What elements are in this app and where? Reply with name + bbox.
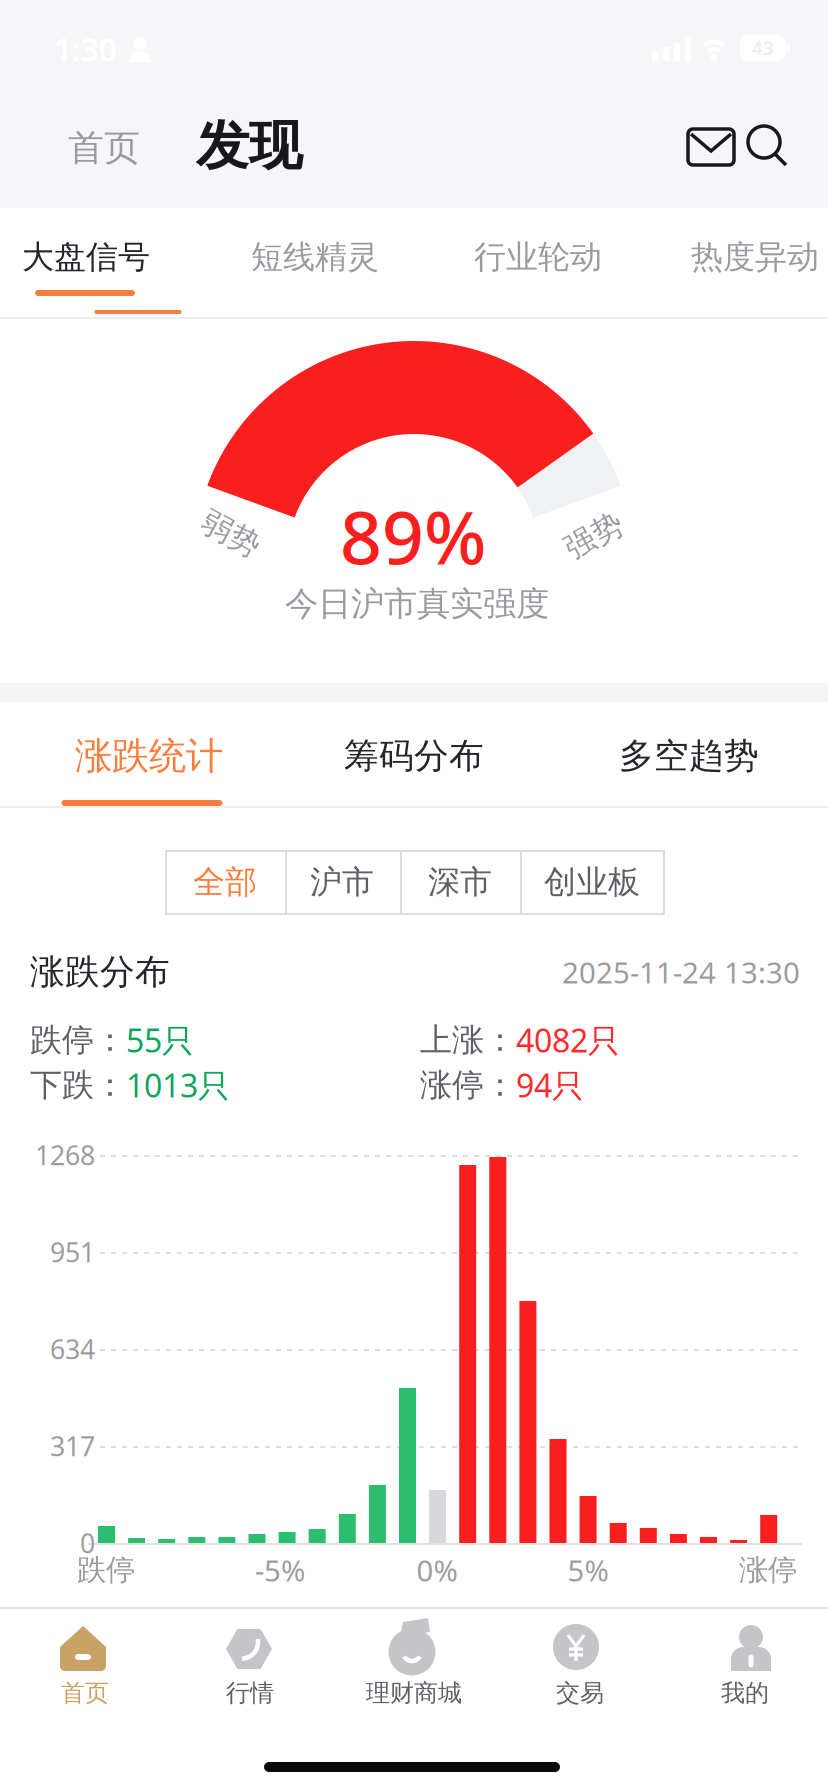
staticText: 634 — [50, 1331, 95, 1367]
staticText: 全部 — [193, 862, 257, 902]
staticText: 创业板 — [544, 862, 640, 902]
staticText: 0 — [80, 1525, 95, 1561]
staticText: 5% — [567, 1550, 608, 1589]
staticText: 理财商城 — [366, 1678, 462, 1708]
button[interactable]: 首页 — [10, 1616, 160, 1716]
button[interactable]: 多空趋势 — [579, 706, 799, 806]
staticText: 强势 — [563, 517, 625, 555]
staticText: 沪市 — [310, 862, 374, 902]
staticText: 行情 — [226, 1678, 274, 1708]
button[interactable]: 行业轮动 — [453, 205, 623, 309]
staticText: 行业轮动 — [474, 237, 602, 277]
button[interactable]: 我的 — [670, 1616, 820, 1716]
staticText: 1013只 — [126, 1064, 230, 1106]
staticText: 跌停： — [30, 1020, 126, 1060]
staticText: 涨跌统计 — [75, 733, 223, 779]
staticText: 我的 — [721, 1678, 769, 1708]
staticText: 首页 — [68, 126, 140, 170]
button[interactable]: 热度异动 — [682, 205, 828, 309]
staticText: 涨跌分布 — [30, 951, 170, 993]
button[interactable]: 搜索 — [742, 124, 790, 172]
staticText: 89% — [340, 487, 486, 585]
staticText: -5% — [255, 1550, 305, 1589]
button[interactable]: 创业板 — [521, 850, 662, 913]
staticText: 1:30 — [53, 28, 116, 70]
staticText: 短线精灵 — [251, 237, 379, 277]
staticText: 发现 — [196, 113, 302, 179]
staticText: 深市 — [428, 862, 492, 902]
staticText: 0% — [416, 1550, 457, 1589]
button[interactable]: 行情 — [175, 1616, 325, 1716]
button[interactable]: 沪市 — [285, 850, 398, 913]
staticText: 跌停 — [77, 1552, 135, 1588]
staticText: 317 — [50, 1428, 95, 1464]
staticText: 上涨： — [420, 1020, 516, 1060]
button[interactable]: 短线精灵 — [230, 205, 400, 309]
staticText: 热度异动 — [691, 237, 819, 277]
staticText: 下跌： — [30, 1065, 126, 1105]
button[interactable]: 全部 — [166, 850, 284, 913]
staticText: 94只 — [516, 1064, 584, 1106]
button[interactable]: 交易 — [505, 1616, 655, 1716]
button[interactable]: 大盘信号 — [1, 205, 171, 309]
button[interactable]: 理财商城 — [339, 1616, 489, 1716]
staticText: 筹码分布 — [344, 735, 484, 777]
staticText: 涨停 — [739, 1552, 797, 1588]
button[interactable]: 筹码分布 — [304, 706, 524, 806]
staticText: 951 — [50, 1234, 95, 1270]
staticText: 涨停： — [420, 1065, 516, 1105]
staticText: 2025-11-24 13:30 — [562, 952, 800, 991]
staticText: 弱势 — [200, 515, 262, 553]
staticText: 首页 — [61, 1678, 109, 1708]
staticText: 多空趋势 — [619, 735, 759, 777]
staticText: 55只 — [126, 1019, 194, 1061]
button[interactable]: 深市 — [401, 850, 519, 913]
staticText: 大盘信号 — [22, 237, 150, 277]
staticText: 4082只 — [516, 1019, 620, 1061]
button[interactable]: 消息 — [683, 123, 739, 171]
button[interactable]: 涨跌统计 — [39, 706, 259, 806]
staticText: 43 — [752, 36, 774, 60]
staticText: 1268 — [35, 1137, 95, 1173]
staticText: 交易 — [556, 1678, 604, 1708]
button[interactable]: 首页 — [49, 103, 159, 193]
staticText: 今日沪市真实强度 — [285, 583, 549, 624]
